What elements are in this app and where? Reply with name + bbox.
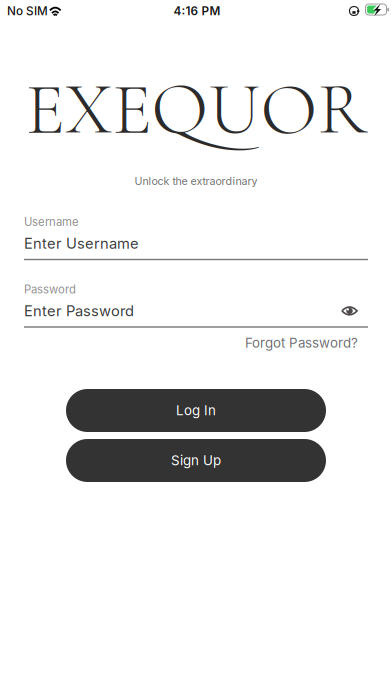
button[interactable]: Log In: [66, 389, 326, 432]
staticText: EXEQUOR: [25, 64, 366, 154]
staticText: Unlock the extraordinary: [134, 174, 257, 187]
staticText: Sign Up: [171, 452, 221, 468]
staticText: Enter Password: [24, 302, 134, 320]
staticText: No SIM: [7, 4, 48, 18]
staticText: Username: [24, 215, 79, 229]
button[interactable]: Show password: [341, 305, 368, 316]
staticText: Enter Username: [24, 234, 139, 252]
button[interactable]: Forgot Password?: [245, 332, 358, 354]
staticText: 4:16 PM: [173, 4, 220, 18]
staticText: Forgot Password?: [245, 335, 358, 351]
staticText: Log In: [176, 402, 216, 418]
staticText: Password: [24, 283, 76, 296]
button[interactable]: Sign Up: [66, 439, 326, 482]
